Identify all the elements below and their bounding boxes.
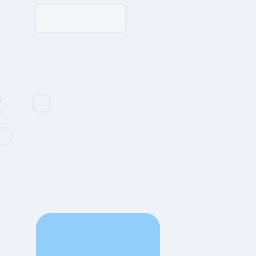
button[interactable]: Title field — [35, 4, 126, 33]
button[interactable]: Options — [33, 95, 50, 112]
button[interactable]: Continue — [36, 213, 160, 256]
